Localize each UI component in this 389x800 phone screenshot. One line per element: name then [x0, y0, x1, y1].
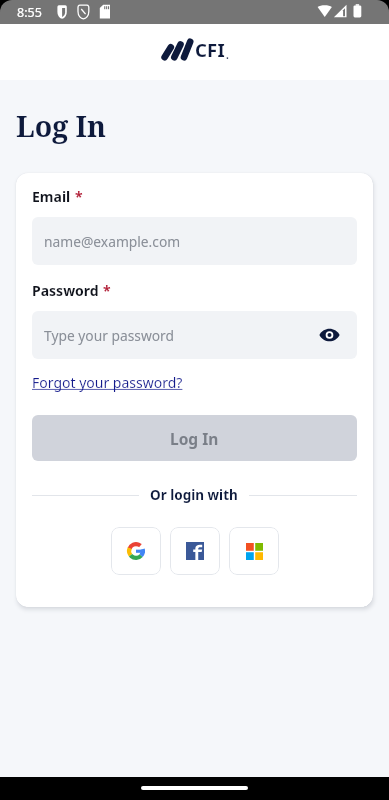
staticText: Password: [32, 281, 99, 300]
button[interactable]: Sign in with Google: [111, 527, 161, 575]
staticText: *: [75, 187, 83, 206]
button[interactable]: Log In: [32, 415, 357, 461]
staticText: Log In: [170, 428, 219, 449]
button[interactable]: Type your password: [32, 311, 357, 359]
button[interactable]: Show password: [315, 321, 343, 349]
button[interactable]: Sign in with Facebook: [170, 527, 220, 575]
staticText: *: [103, 281, 111, 300]
staticText: name@example.com: [44, 232, 181, 251]
button[interactable]: name@example.com: [32, 217, 357, 265]
staticText: 8:55: [17, 4, 42, 21]
staticText: Type your password: [44, 326, 175, 345]
staticText: .: [226, 48, 229, 62]
button[interactable]: Forgot your password?: [32, 373, 183, 392]
staticText: CFI: [195, 37, 225, 62]
staticText: Or login with: [150, 486, 238, 504]
staticText: Email: [32, 187, 71, 206]
button[interactable]: Sign in with Microsoft: [229, 527, 279, 575]
staticText: Log In: [16, 107, 106, 146]
